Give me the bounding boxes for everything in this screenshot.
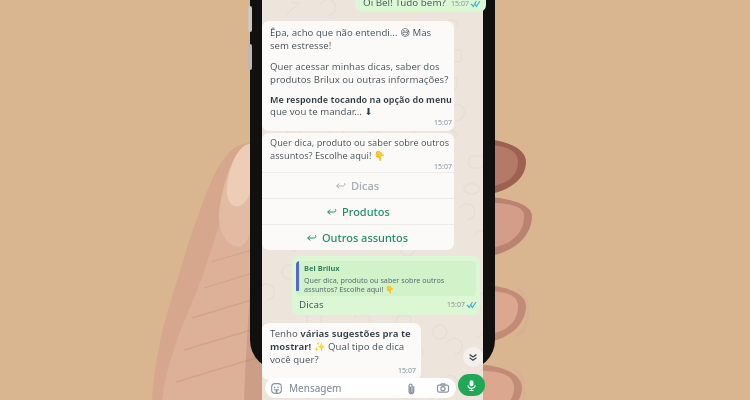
staticText: Dicas <box>351 178 380 193</box>
staticText: Produtos <box>342 204 390 219</box>
other: Attach <box>406 383 417 394</box>
other: Camera <box>437 382 449 394</box>
button[interactable]: Bel Brilux <box>296 261 476 311</box>
staticText: Bel Brilux <box>304 263 340 273</box>
staticText: Dicas <box>299 298 324 311</box>
button[interactable]: Dicas <box>262 173 454 198</box>
staticText: Outros assuntos <box>322 230 409 245</box>
staticText: Me responde tocando na opção do menu <box>270 93 452 105</box>
staticText: Quer acessar minhas dicas, saber dos pro… <box>270 60 449 86</box>
button[interactable]: Emoji <box>271 378 449 398</box>
staticText: Êpa, acho que não entendi... 😅 Mas sem e… <box>270 26 432 52</box>
staticText: 15:07 <box>434 162 452 172</box>
staticText: Quer dica, produto ou saber sobre outros… <box>304 275 445 294</box>
staticText: Tenho várias sugestões pra te mostrar! ✨… <box>270 327 411 366</box>
staticText: Mensagem <box>289 381 342 395</box>
button[interactable]: Outros assuntos <box>262 225 454 250</box>
staticText: 15:07 <box>447 300 465 310</box>
staticText: 15:07 <box>398 366 416 376</box>
button[interactable]: Êpa, acho que não entendi... 😅 Mas sem e… <box>270 26 452 128</box>
staticText: 15:07 <box>451 0 469 9</box>
button[interactable]: Voice message <box>458 374 485 396</box>
button[interactable]: Scroll to bottom <box>463 347 483 367</box>
staticText: Quer dica, produto ou saber sobre outros… <box>270 136 450 162</box>
button[interactable]: Oi Bel! Tudo bem? <box>363 0 480 9</box>
button[interactable]: Tenho várias sugestões pra te mostrar! ✨… <box>270 327 416 376</box>
staticText: Oi Bel! Tudo bem? <box>363 0 446 9</box>
other: Emoji <box>271 383 282 394</box>
staticText: 15:07 <box>434 118 452 128</box>
staticText: que vou te mandar... ⬇ <box>270 105 373 118</box>
button[interactable]: Produtos <box>262 199 454 224</box>
